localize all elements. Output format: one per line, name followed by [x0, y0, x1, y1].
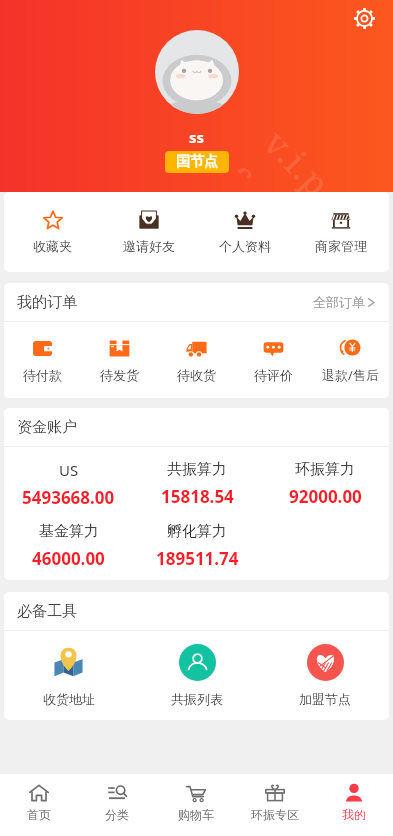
button[interactable]: 基金算力 — [4, 522, 133, 570]
button[interactable]: 首页 — [0, 783, 78, 822]
button[interactable]: 收货地址 — [4, 644, 133, 707]
button[interactable]: 国节点 — [165, 151, 229, 173]
button[interactable]: 收藏夹 — [4, 210, 101, 254]
staticText: 共振算力 — [167, 460, 227, 479]
staticText: 我的订单 — [17, 293, 77, 312]
staticText: 首页 — [27, 807, 51, 822]
button[interactable]: 退款/售后 — [312, 337, 389, 384]
staticText: 邀请好友 — [123, 238, 175, 254]
staticText: 15818.54 — [161, 485, 234, 508]
button[interactable]: 待付款 — [4, 338, 81, 383]
staticText: 待收货 — [177, 367, 216, 383]
staticText: 全部订单 — [313, 294, 365, 310]
button[interactable]: 环振算力 — [261, 460, 389, 508]
staticText: 收货地址 — [43, 691, 95, 707]
staticText: 孵化算力 — [167, 522, 227, 541]
staticText: ss — [189, 127, 205, 147]
staticText: 分类 — [105, 807, 129, 822]
button[interactable]: 购物车 — [156, 783, 235, 822]
button[interactable]: US — [4, 460, 133, 509]
staticText: 基金算力 — [39, 522, 99, 541]
staticText: 共振列表 — [171, 691, 223, 707]
staticText: 购物车 — [178, 807, 214, 822]
button[interactable]: 商家管理 — [293, 210, 389, 254]
staticText: 商家管理 — [315, 238, 367, 254]
staticText: 退款/售后 — [322, 366, 379, 384]
staticText: 收藏夹 — [33, 238, 72, 254]
staticText: 环振算力 — [295, 460, 355, 479]
button[interactable]: 待发货 — [81, 338, 158, 383]
staticText: 环振专区 — [251, 807, 299, 822]
staticText: 46000.00 — [32, 547, 105, 570]
button[interactable]: 全部订单 — [313, 294, 376, 310]
button[interactable]: 环振专区 — [235, 783, 314, 822]
staticText: 待发货 — [100, 367, 139, 383]
button[interactable]: 我的 — [314, 783, 393, 822]
staticText: v.i.p.c — [236, 120, 361, 245]
staticText: 我的 — [342, 807, 366, 822]
staticText: 加盟节点 — [299, 691, 351, 707]
button[interactable]: 分类 — [78, 783, 156, 822]
staticText: 资金账户 — [17, 418, 77, 437]
staticText: 个人资料 — [219, 238, 271, 254]
button[interactable]: 邀请好友 — [101, 210, 197, 254]
staticText: 5493668.00 — [22, 486, 115, 509]
button[interactable]: 孵化算力 — [133, 522, 261, 570]
staticText: 92000.00 — [289, 485, 362, 508]
button[interactable]: 加盟节点 — [261, 644, 389, 707]
button[interactable]: 共振算力 — [133, 460, 261, 508]
staticText: 189511.74 — [156, 547, 239, 570]
button[interactable]: Settings — [350, 4, 379, 33]
staticText: 国节点 — [176, 153, 218, 171]
staticText: 必备工具 — [17, 602, 77, 621]
staticText: 待评价 — [254, 367, 293, 383]
button[interactable]: 共振列表 — [133, 644, 261, 707]
staticText: 待付款 — [23, 367, 62, 383]
button[interactable]: 待收货 — [158, 338, 235, 383]
button[interactable]: 待评价 — [235, 338, 312, 383]
button[interactable]: 个人资料 — [197, 210, 293, 254]
staticText: US — [59, 460, 79, 480]
